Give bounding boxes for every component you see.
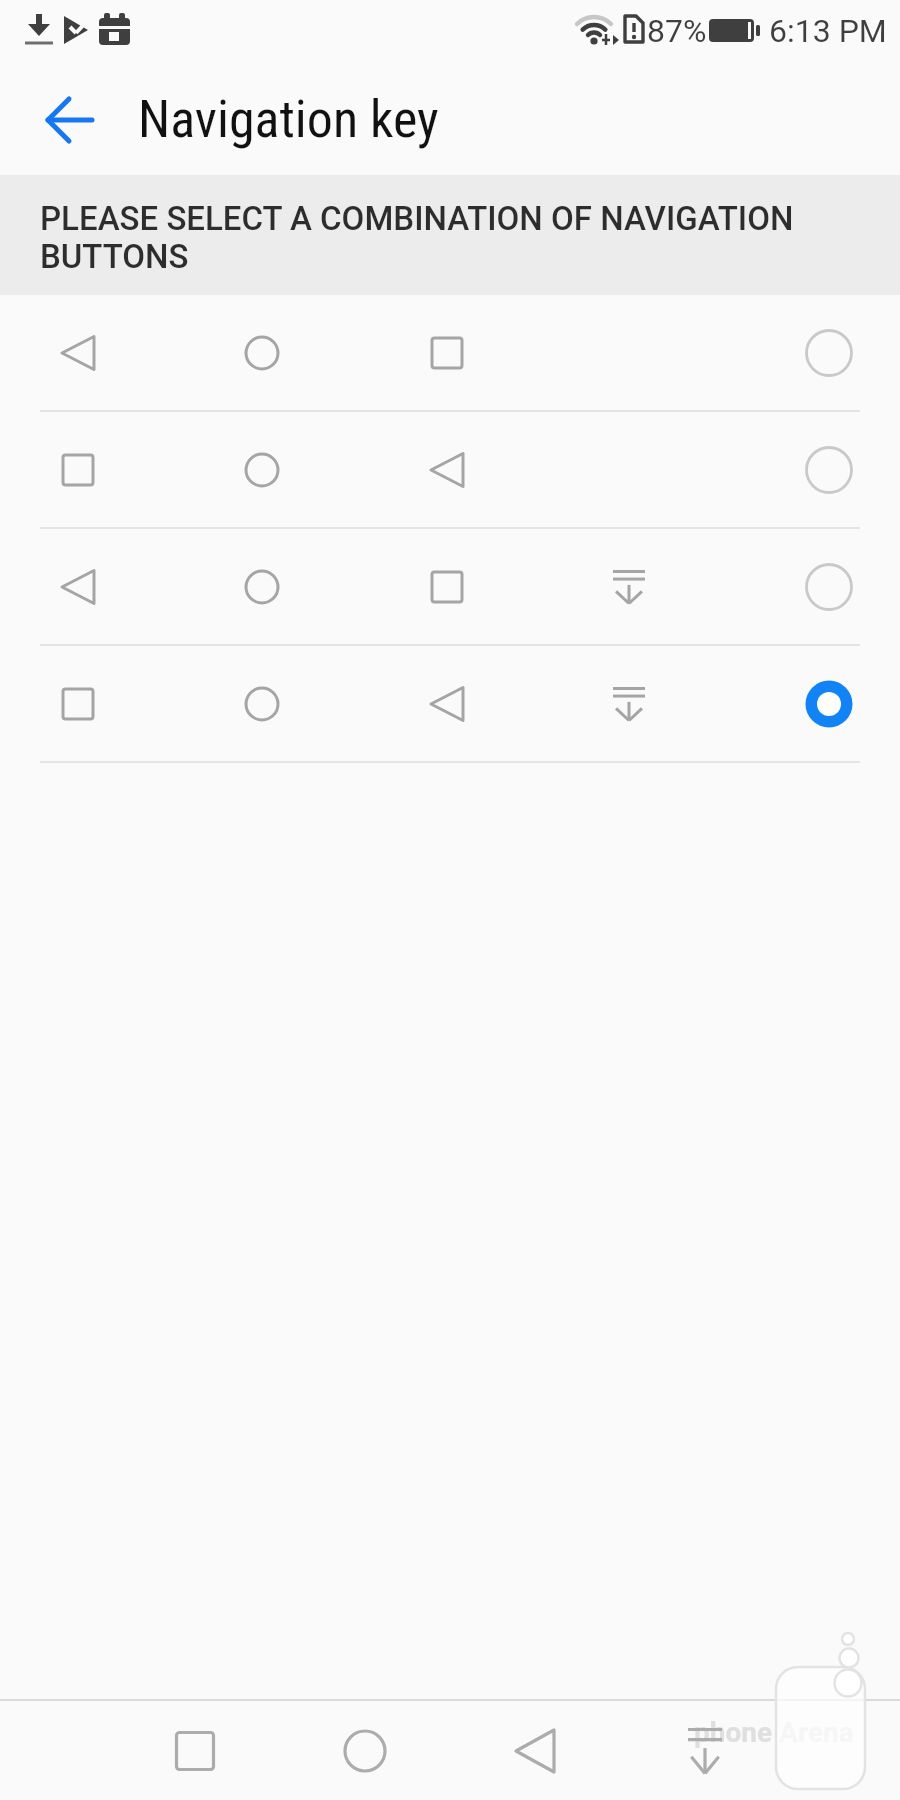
button[interactable]	[343, 1729, 387, 1773]
staticText: Navigation key	[138, 89, 439, 150]
staticText: 87%	[647, 12, 707, 50]
staticText: PLEASE SELECT A COMBINATION OF NAVIGATIO…	[40, 199, 794, 276]
button[interactable]	[0, 295, 900, 410]
button[interactable]	[0, 646, 900, 761]
button[interactable]	[0, 529, 900, 644]
button[interactable]	[36, 86, 100, 150]
button[interactable]	[686, 1727, 724, 1775]
staticText: 6:13 PM	[769, 12, 887, 50]
staticText: phone Arena	[694, 1716, 854, 1749]
button[interactable]	[0, 412, 900, 527]
button[interactable]	[514, 1728, 556, 1774]
button[interactable]	[175, 1731, 215, 1771]
